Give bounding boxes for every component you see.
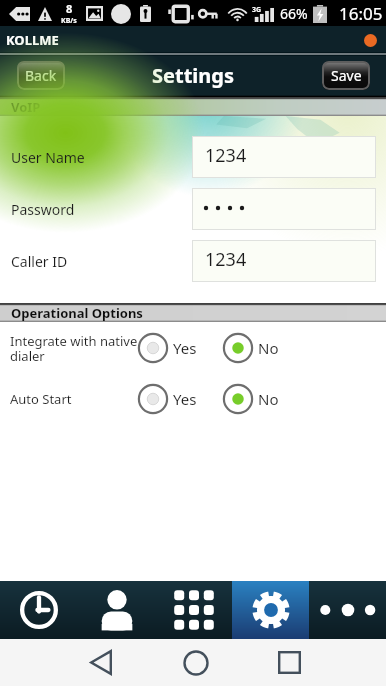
staticText: Yes [173, 338, 197, 358]
button[interactable]: Yes [138, 383, 197, 415]
staticText: Yes [173, 389, 197, 409]
button[interactable]: No [223, 332, 279, 364]
button[interactable]: No [223, 383, 279, 415]
staticText: Back [25, 66, 57, 85]
staticText: Caller ID [11, 252, 68, 271]
staticText: 66% [280, 4, 308, 23]
button[interactable]: Home [173, 639, 219, 686]
staticText: 1234 [205, 143, 247, 168]
button[interactable]: Save [322, 61, 370, 90]
button[interactable] [192, 188, 376, 230]
button[interactable]: Yes [138, 332, 197, 364]
staticText: No [258, 389, 279, 409]
button[interactable]: Recent calls [0, 581, 78, 639]
button[interactable]: Recents [266, 639, 312, 686]
staticText: KOLLME [6, 31, 59, 49]
button[interactable]: 1234 [192, 240, 376, 282]
button[interactable]: Back [17, 61, 65, 90]
button[interactable]: Contacts [78, 581, 155, 639]
staticText: KB/s [61, 16, 77, 26]
button[interactable]: Back [78, 639, 124, 686]
button[interactable]: 1234 [192, 136, 376, 178]
staticText: Settings [152, 62, 234, 89]
button[interactable]: Settings [232, 581, 309, 639]
staticText: Operational Options [11, 304, 143, 322]
staticText: 8 [66, 1, 73, 16]
button[interactable]: More [309, 581, 386, 639]
staticText: 16:05 [339, 2, 383, 25]
staticText: User Name [11, 148, 85, 167]
staticText: Auto Start [10, 390, 72, 408]
staticText: VoIP [11, 98, 41, 116]
staticText: Integrate with native dialer [10, 332, 138, 365]
staticText: 3G [252, 5, 262, 15]
button[interactable]: Dialpad [155, 581, 232, 639]
staticText: No [258, 338, 279, 358]
staticText: Password [11, 200, 75, 219]
staticText: 1234 [205, 247, 247, 272]
staticText: Save [331, 66, 362, 85]
